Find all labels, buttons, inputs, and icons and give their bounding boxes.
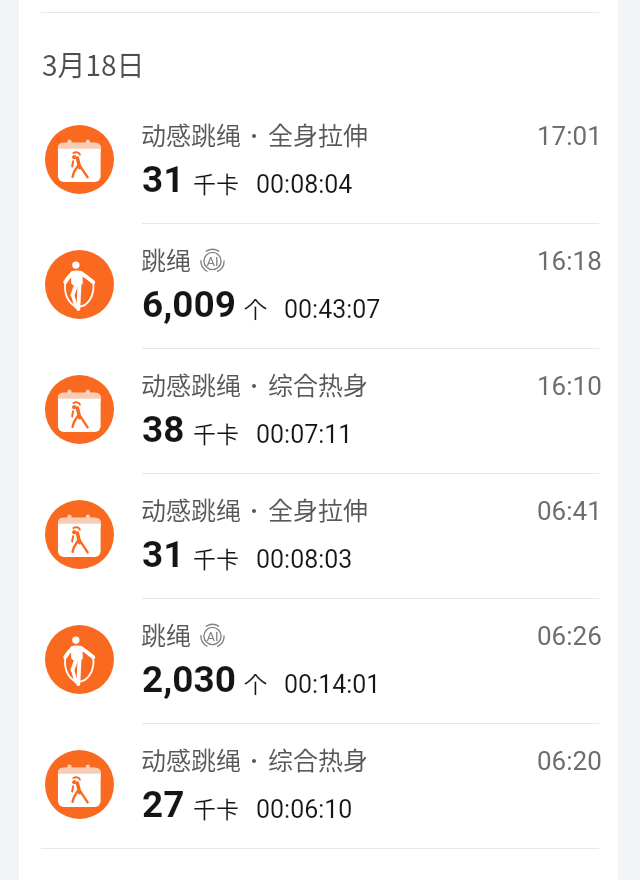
staticText: 31 <box>142 158 185 201</box>
staticText: 综合热身 <box>268 741 369 777</box>
staticText: 3月18日 <box>42 44 145 85</box>
staticText: 千卡 <box>193 416 239 449</box>
staticText: 千卡 <box>193 791 239 824</box>
staticText: 31 <box>142 533 185 576</box>
staticText: 全身拉伸 <box>268 116 369 152</box>
staticText: 2,030 <box>142 658 236 701</box>
button[interactable]: 跳绳 <box>19 599 618 723</box>
staticText: 38 <box>142 408 185 451</box>
staticText: 00:14:01 <box>284 670 381 699</box>
staticText: 全身拉伸 <box>268 491 369 527</box>
staticText: 06:20 <box>537 746 602 776</box>
staticText: 27 <box>142 783 185 826</box>
staticText: AI <box>206 629 219 644</box>
staticText: 千卡 <box>193 541 239 574</box>
button[interactable]: 动感跳绳 <box>19 349 618 473</box>
staticText: 00:08:04 <box>256 170 353 199</box>
staticText: 综合热身 <box>268 366 369 402</box>
staticText: 动感跳绳 <box>141 366 242 402</box>
staticText: 00:07:11 <box>256 420 353 449</box>
staticText: 跳绳 <box>141 616 192 652</box>
staticText: 动感跳绳 <box>141 741 242 777</box>
staticText: 千卡 <box>193 166 239 199</box>
staticText: 个 <box>244 291 267 324</box>
staticText: 16:10 <box>537 371 602 401</box>
staticText: AI <box>206 254 219 269</box>
staticText: 00:43:07 <box>284 295 381 324</box>
staticText: 跳绳 <box>141 241 192 277</box>
staticText: 16:18 <box>537 246 602 276</box>
staticText: 动感跳绳 <box>141 491 242 527</box>
staticText: 个 <box>244 666 267 699</box>
button[interactable]: 动感跳绳 <box>19 724 618 848</box>
staticText: 00:06:10 <box>256 795 353 824</box>
staticText: 06:26 <box>537 621 602 651</box>
button[interactable]: 动感跳绳 <box>19 99 618 223</box>
staticText: 00:08:03 <box>256 545 353 574</box>
staticText: 6,009 <box>142 283 236 326</box>
staticText: 17:01 <box>537 121 602 151</box>
staticText: 06:41 <box>537 496 602 526</box>
button[interactable]: 动感跳绳 <box>19 474 618 598</box>
staticText: 动感跳绳 <box>141 116 242 152</box>
button[interactable]: 跳绳 <box>19 224 618 348</box>
